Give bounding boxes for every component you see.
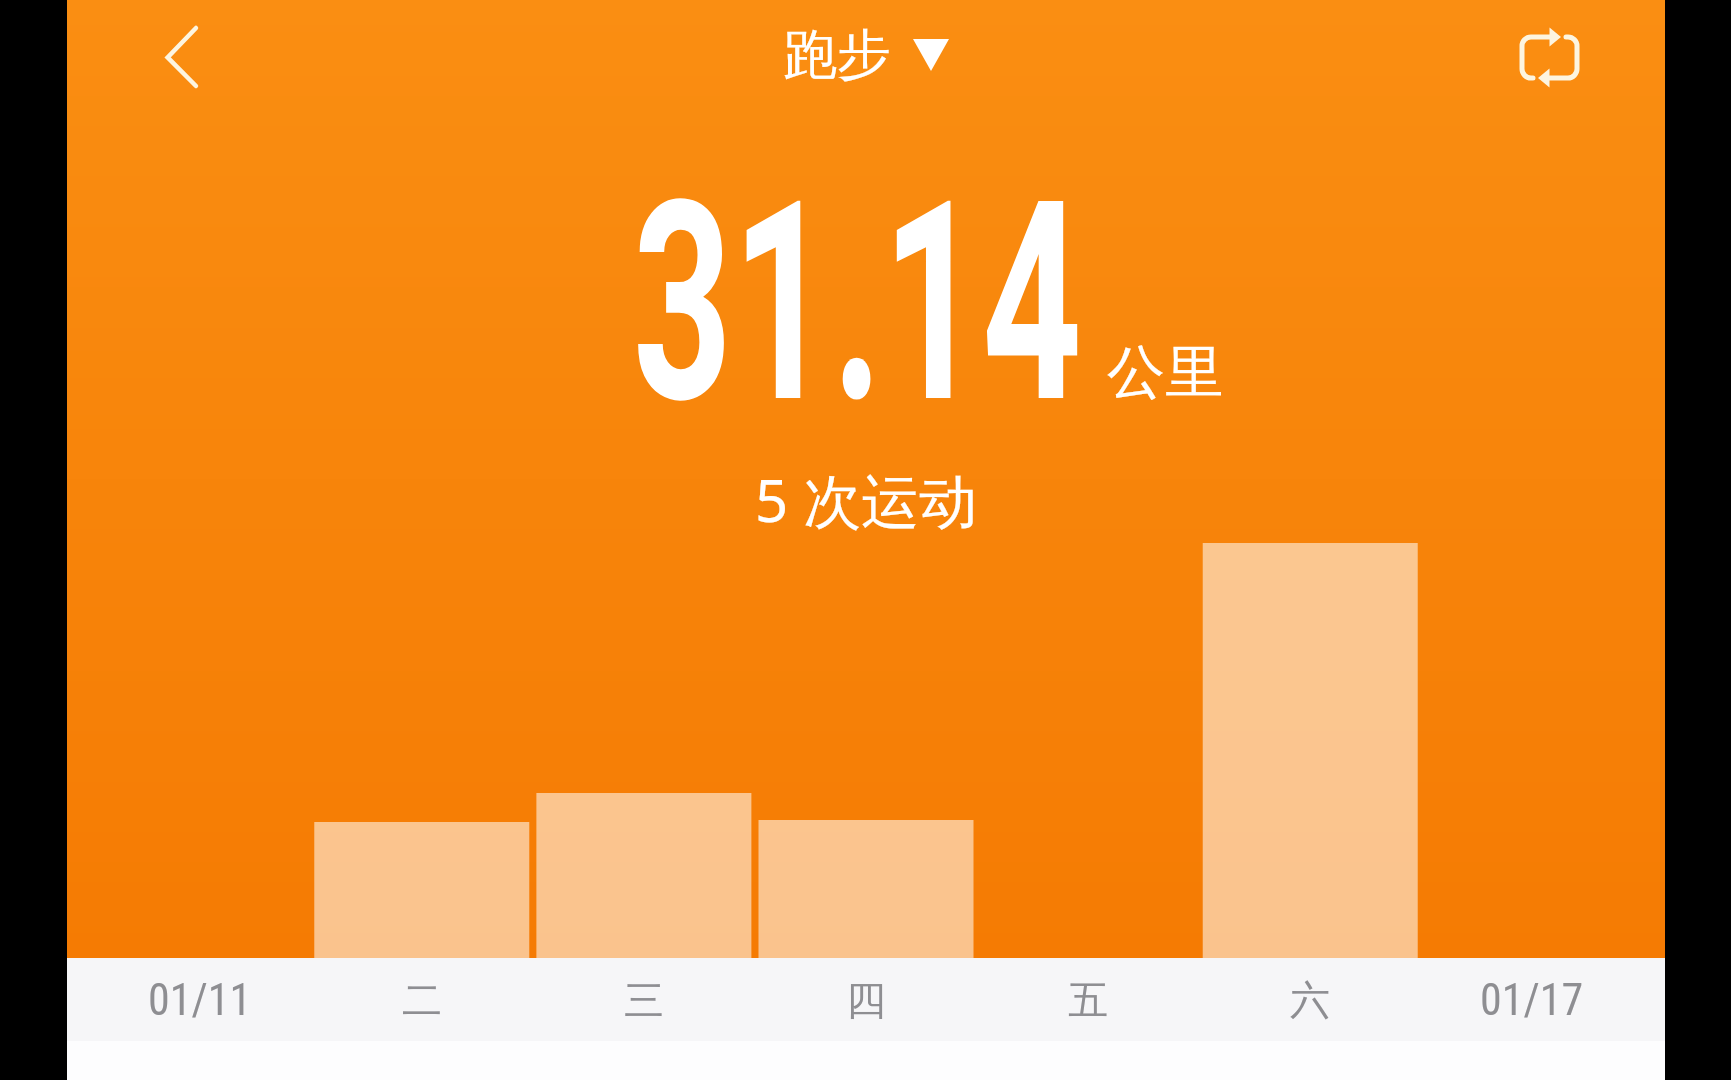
staticText: 跑步 xyxy=(783,21,891,89)
button[interactable] xyxy=(155,18,211,96)
staticText: 01/11 xyxy=(148,974,252,1026)
button[interactable] xyxy=(1515,18,1581,90)
staticText: 三 xyxy=(624,975,664,1025)
staticText: 01/17 xyxy=(1480,974,1584,1026)
staticText: 公里 xyxy=(1107,336,1223,409)
staticText: 六 xyxy=(1290,975,1330,1025)
staticText: 31.14 xyxy=(633,141,1082,466)
staticText: 二 xyxy=(402,975,442,1025)
staticText: 五 xyxy=(1068,975,1108,1025)
staticText: 5 次运动 xyxy=(755,460,978,539)
button[interactable]: 跑步 xyxy=(783,21,949,89)
staticText: 四 xyxy=(846,975,886,1025)
